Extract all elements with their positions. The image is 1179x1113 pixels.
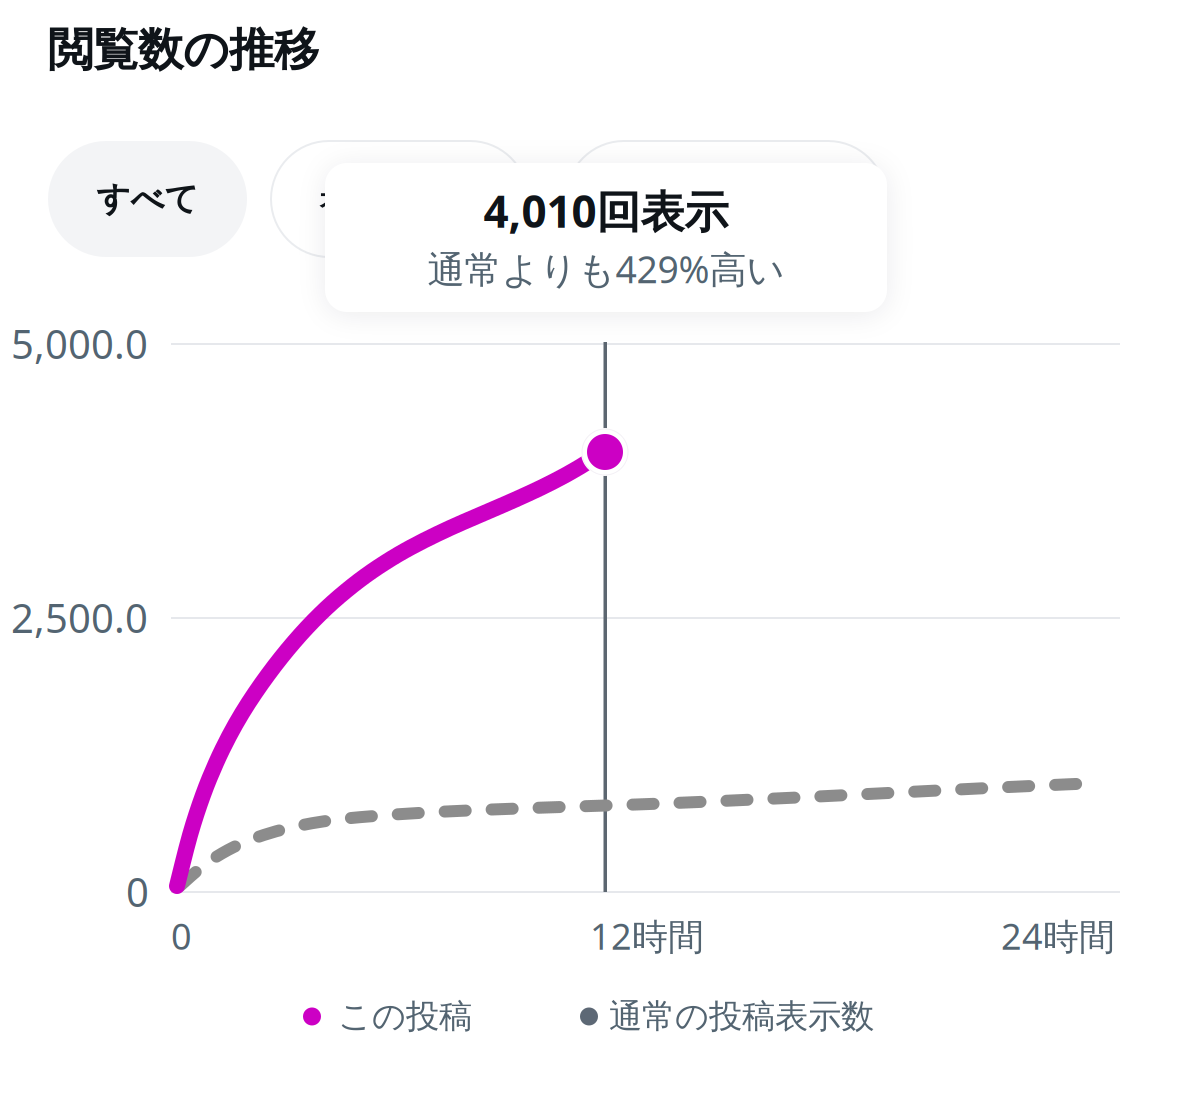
staticText: 0 <box>126 865 149 918</box>
staticText: この投稿 <box>338 996 472 1037</box>
button[interactable]: オーガニック <box>271 141 528 257</box>
staticText: 通常よりも429%高い <box>427 244 784 293</box>
staticText: 12時間 <box>590 912 704 960</box>
button[interactable]: プロモーション <box>566 141 886 257</box>
staticText: プロモーション <box>631 183 820 215</box>
staticText: 2,500.0 <box>11 591 148 644</box>
button[interactable]: すべて <box>48 141 247 257</box>
staticText: 0 <box>171 912 192 960</box>
staticText: 24時間 <box>1001 912 1115 960</box>
staticText: オーガニック <box>318 183 480 215</box>
staticText: 5,000.0 <box>11 317 148 370</box>
staticText: 通常の投稿表示数 <box>609 996 874 1037</box>
staticText: 閲覧数の推移 <box>48 22 319 78</box>
staticText: すべて <box>96 178 198 219</box>
staticText: 4,010回表示 <box>483 181 728 240</box>
